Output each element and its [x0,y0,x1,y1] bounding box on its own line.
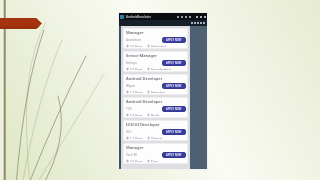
staticText: 1-3 Years [130,91,143,93]
staticText: APPLY NOW [166,107,182,111]
staticText: APPLY NOW [166,84,182,88]
staticText: TCS [126,107,162,111]
staticText: 4-7 Years [130,68,143,70]
button[interactable]: APPLY NOW [162,129,186,135]
staticText: Senior Manager [126,53,157,58]
staticText: 1-3 Years [130,137,143,139]
staticText: Manager [126,30,144,35]
staticText: Android Developer [126,76,163,81]
staticText: HCL [126,130,162,134]
button[interactable]: Section marker [0,18,42,29]
staticText: Wipro [126,84,162,88]
staticText: Tech M [126,153,162,157]
button[interactable]: Senior Manager [123,51,188,72]
button[interactable]: APPLY NOW [162,60,186,66]
button[interactable]: APPLY NOW [162,152,186,158]
staticText: Pune [151,160,186,162]
button[interactable]: APPLY NOW [162,37,186,43]
button[interactable]: Manager [123,28,188,49]
staticText: APPLY NOW [166,61,182,65]
staticText: 3-6 Years [130,160,143,162]
staticText: Accenture [126,38,162,42]
staticText: Hyderabad [151,45,186,47]
staticText: 2-5 Years [130,45,143,47]
staticText: APPLY NOW [166,153,182,157]
staticText: Bangalore [151,91,186,93]
staticText: Android Developer [126,99,163,104]
staticText: Noida [151,114,186,116]
staticText: AndroidEmulator [126,15,177,19]
staticText: APPLY NOW [166,130,182,134]
staticText: Chennai [151,137,186,139]
staticText: Infosys [126,61,162,65]
button[interactable]: Manager [123,143,188,164]
button[interactable]: APPLY NOW [162,83,186,89]
staticText: IOS/UI Developer [126,122,160,127]
button[interactable]: IOS/UI Developer [123,120,188,141]
button[interactable]: APPLY NOW [162,106,186,112]
staticText: APPLY NOW [166,38,182,42]
button[interactable]: Android Developer [123,97,188,118]
staticText: Manager [126,145,144,150]
staticText: Secunderabad [151,68,186,70]
staticText: 2-4 Years [130,114,143,116]
button[interactable]: Android Developer [123,74,188,95]
